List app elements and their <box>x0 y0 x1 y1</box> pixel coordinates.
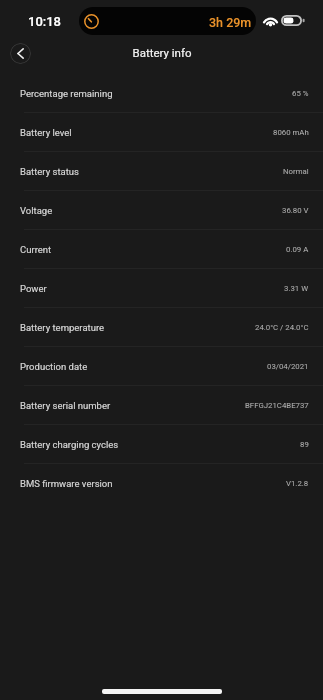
staticText: 03/04/2021 <box>267 362 309 371</box>
button[interactable]: Power <box>0 269 323 308</box>
staticText: 36.80 V <box>282 206 309 215</box>
staticText: 3h 29m <box>209 15 252 30</box>
staticText: BMS firmware version <box>20 478 113 489</box>
staticText: BFFGJ21C4BE737 <box>245 401 309 410</box>
staticText: Battery status <box>20 166 79 177</box>
button[interactable]: Back <box>10 43 31 64</box>
staticText: Battery temperature <box>20 322 105 333</box>
staticText: Battery serial number <box>20 400 111 411</box>
staticText: Battery info <box>132 46 192 59</box>
button[interactable]: Percentage remaining <box>0 74 323 113</box>
staticText: 3.31 W <box>284 284 309 293</box>
button[interactable]: BMS firmware version <box>0 464 323 503</box>
staticText: V1.2.8 <box>286 479 309 488</box>
button[interactable]: Battery temperature <box>0 308 323 347</box>
staticText: 10:18 <box>28 14 61 29</box>
button[interactable]: Battery charging cycles <box>0 425 323 464</box>
staticText: 0.09 A <box>286 245 309 254</box>
staticText: Current <box>20 244 52 255</box>
staticText: Battery level <box>20 127 72 138</box>
staticText: Normal <box>283 167 309 176</box>
staticText: 89 <box>300 440 309 449</box>
staticText: 24.0°C / 24.0°C <box>255 323 309 332</box>
button[interactable]: Battery level <box>0 113 323 152</box>
other: Wi-Fi <box>263 15 278 26</box>
button[interactable]: Production date <box>0 347 323 386</box>
staticText: Production date <box>20 361 88 372</box>
staticText: Power <box>20 283 47 294</box>
staticText: 65 % <box>292 89 309 98</box>
button[interactable]: Battery serial number <box>0 386 323 425</box>
button[interactable]: Voltage <box>0 191 323 230</box>
staticText: Percentage remaining <box>20 88 113 99</box>
button[interactable]: Current <box>0 230 323 269</box>
staticText: Battery charging cycles <box>20 439 119 450</box>
button[interactable]: Battery status <box>0 152 323 191</box>
staticText: 8060 mAh <box>273 128 309 137</box>
staticText: Voltage <box>20 205 53 216</box>
